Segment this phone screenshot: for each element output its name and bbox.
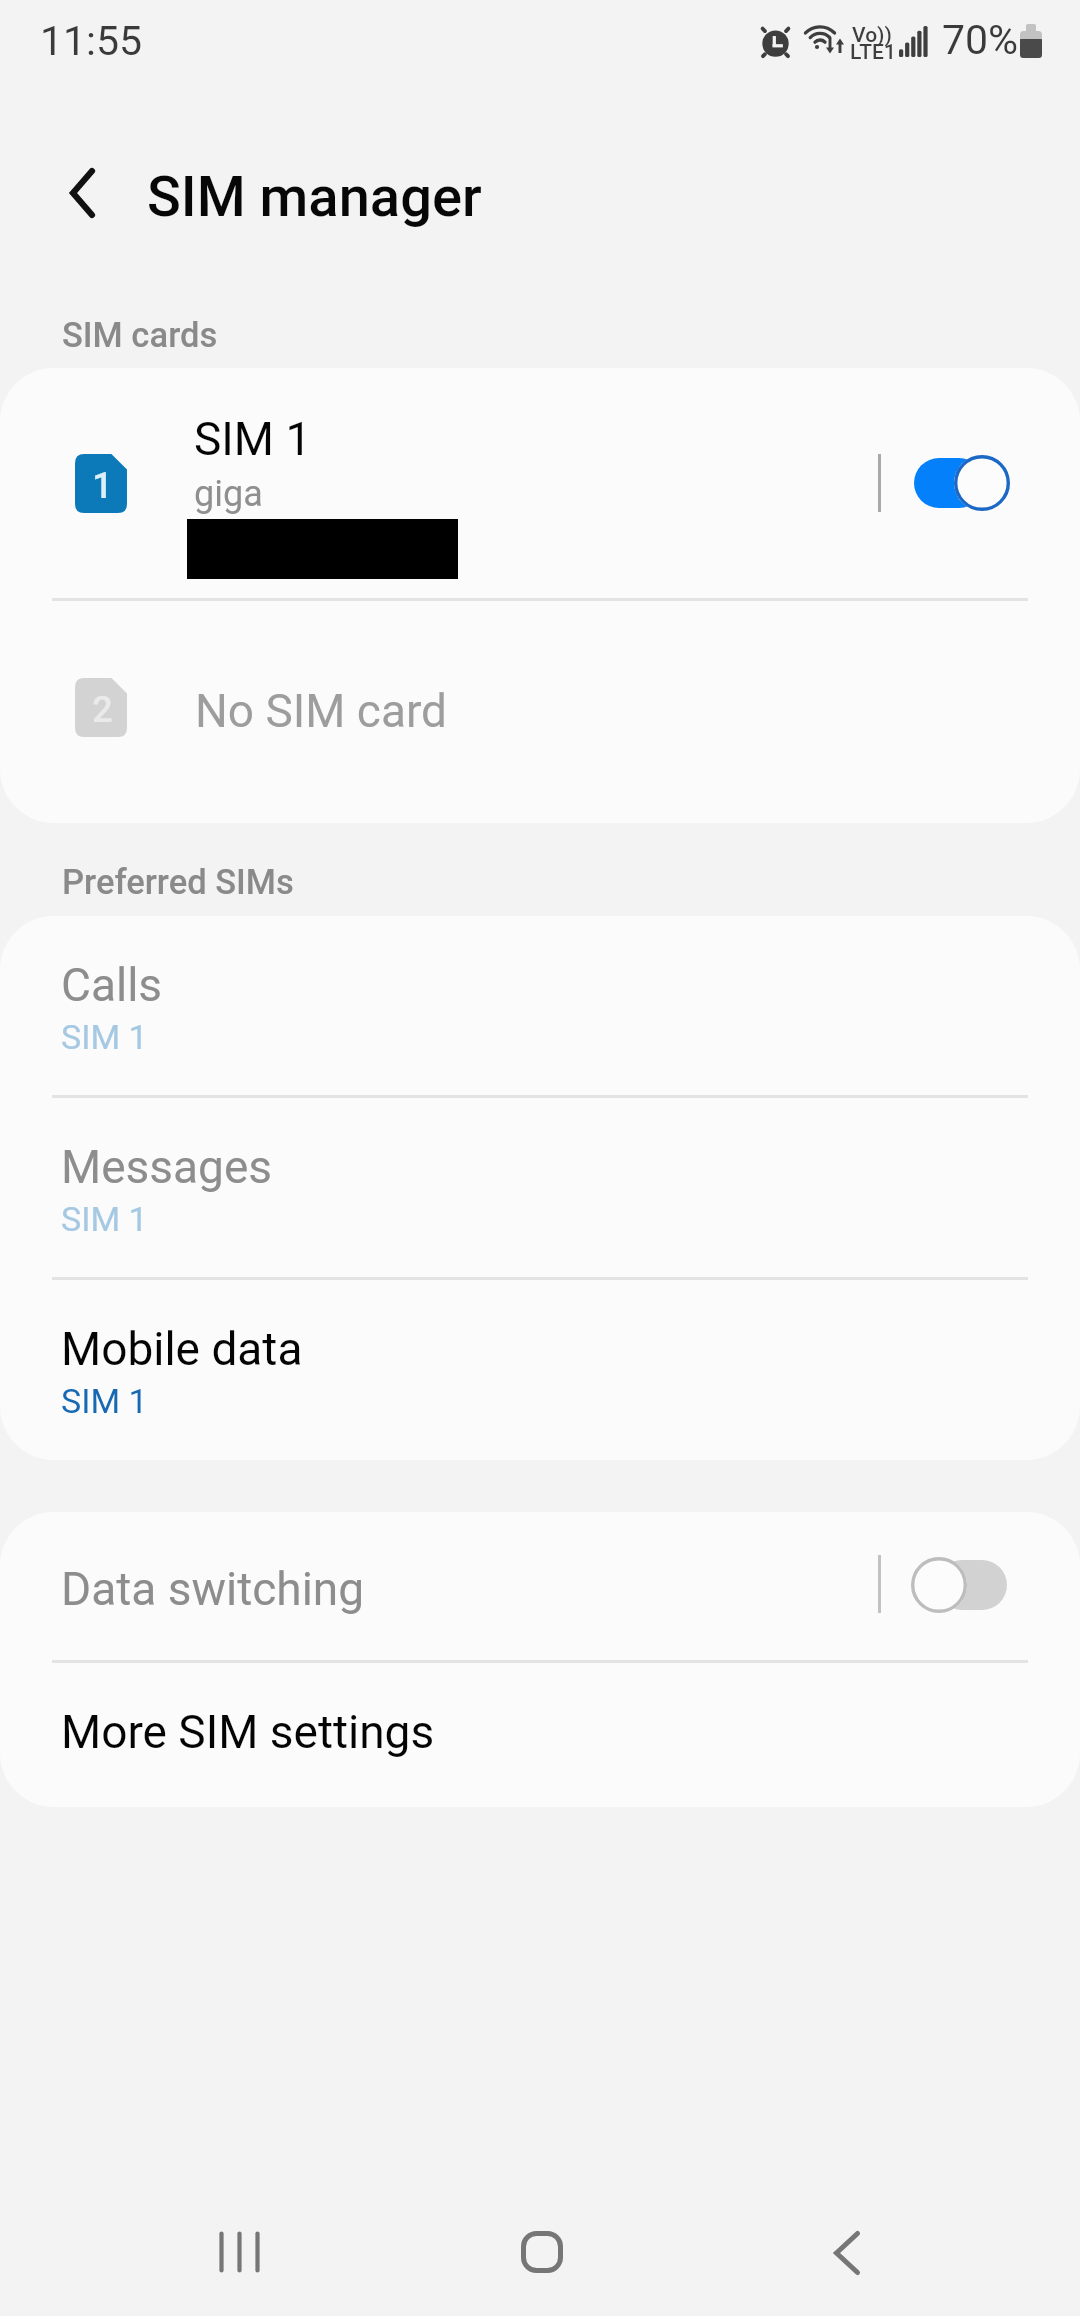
staticText: Calls (61, 958, 163, 1012)
button[interactable]: 1 (0, 368, 1080, 598)
staticText: 1 (92, 465, 113, 507)
button[interactable]: Home (462, 2196, 622, 2308)
staticText: Data switching (61, 1562, 365, 1616)
staticText: Preferred SIMs (62, 862, 294, 902)
staticText: 11:55 (40, 17, 143, 65)
button[interactable]: Turn off SIM 1 (898, 422, 1026, 544)
button[interactable]: Messages (0, 1098, 1080, 1277)
staticText: SIM cards (62, 315, 218, 355)
button[interactable]: Navigate up (46, 150, 118, 236)
staticText: More SIM settings (61, 1705, 435, 1759)
staticText: giga (194, 473, 263, 515)
staticText: SIM 1 (61, 1199, 148, 1239)
staticText: Mobile data (61, 1322, 303, 1376)
button[interactable]: Calls (0, 916, 1080, 1095)
staticText: Messages (61, 1140, 273, 1194)
staticText: SIM 1 (61, 1381, 148, 1421)
staticText: 70% (942, 16, 1019, 64)
button[interactable]: Data switching (0, 1512, 1080, 1660)
button[interactable]: Mobile data (0, 1280, 1080, 1459)
staticText: No SIM card (195, 684, 448, 738)
button[interactable]: More SIM settings (0, 1663, 1080, 1807)
button[interactable]: Recent apps (160, 2196, 320, 2308)
staticText: LTE1 (850, 40, 896, 65)
staticText: SIM manager (147, 164, 482, 230)
staticText: 2 (92, 689, 113, 731)
staticText: Vo)) (852, 23, 892, 48)
staticText: SIM 1 (194, 412, 312, 466)
button[interactable]: 2 (0, 601, 1080, 823)
button[interactable]: Data switching toggle (895, 1524, 1023, 1646)
button[interactable]: Back (767, 2197, 927, 2309)
staticText: SIM 1 (61, 1017, 148, 1057)
